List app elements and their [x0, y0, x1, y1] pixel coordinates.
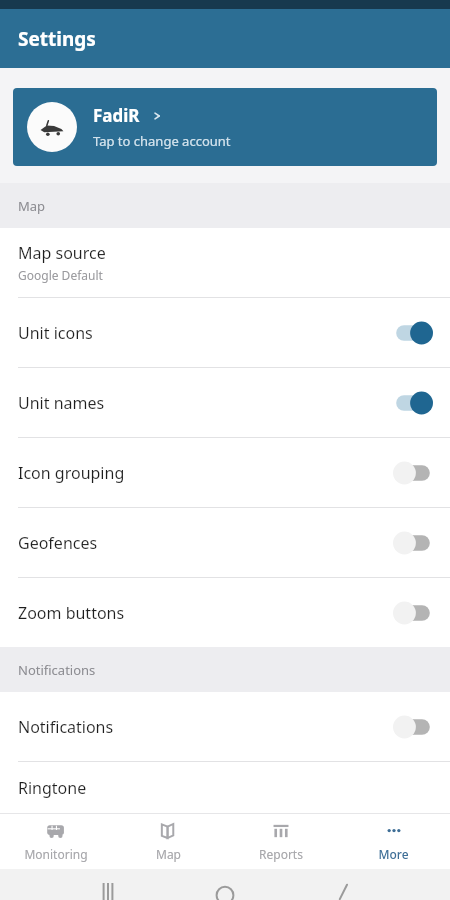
staticText: Zoom buttons: [18, 602, 392, 624]
button[interactable]: More: [337, 814, 450, 869]
staticText: Reports: [259, 846, 303, 862]
button[interactable]: Map source: [0, 228, 450, 297]
staticText: FadiR: [93, 104, 140, 127]
button[interactable]: Geofences: [0, 508, 450, 577]
staticText: Unit names: [18, 392, 392, 414]
staticText: Monitoring: [24, 846, 88, 862]
button[interactable]: Notifications: [0, 692, 450, 761]
button[interactable]: Icon grouping: [0, 438, 450, 507]
staticText: More: [378, 846, 409, 862]
button[interactable]: Zoom buttons: [0, 578, 450, 647]
staticText: Geofences: [18, 532, 392, 554]
staticText: Unit icons: [18, 322, 392, 344]
button[interactable]: Reports: [224, 814, 337, 869]
staticText: Google Default: [18, 267, 103, 283]
staticText: Icon grouping: [18, 462, 392, 484]
staticText: Tap to change account: [93, 132, 231, 150]
staticText: Map: [156, 846, 181, 862]
staticText: Notifications: [18, 716, 392, 738]
staticText: Map: [18, 197, 46, 215]
button[interactable]: Ringtone: [0, 762, 450, 813]
button[interactable]: Map: [112, 814, 224, 869]
staticText: Ringtone: [18, 777, 87, 799]
button[interactable]: Monitoring: [0, 814, 112, 869]
button[interactable]: Unit icons: [0, 298, 450, 367]
staticText: Notifications: [18, 661, 96, 679]
button[interactable]: Unit names: [0, 368, 450, 437]
button[interactable]: FadiR: [13, 88, 437, 166]
staticText: Map source: [18, 242, 106, 264]
staticText: Settings: [18, 26, 96, 52]
